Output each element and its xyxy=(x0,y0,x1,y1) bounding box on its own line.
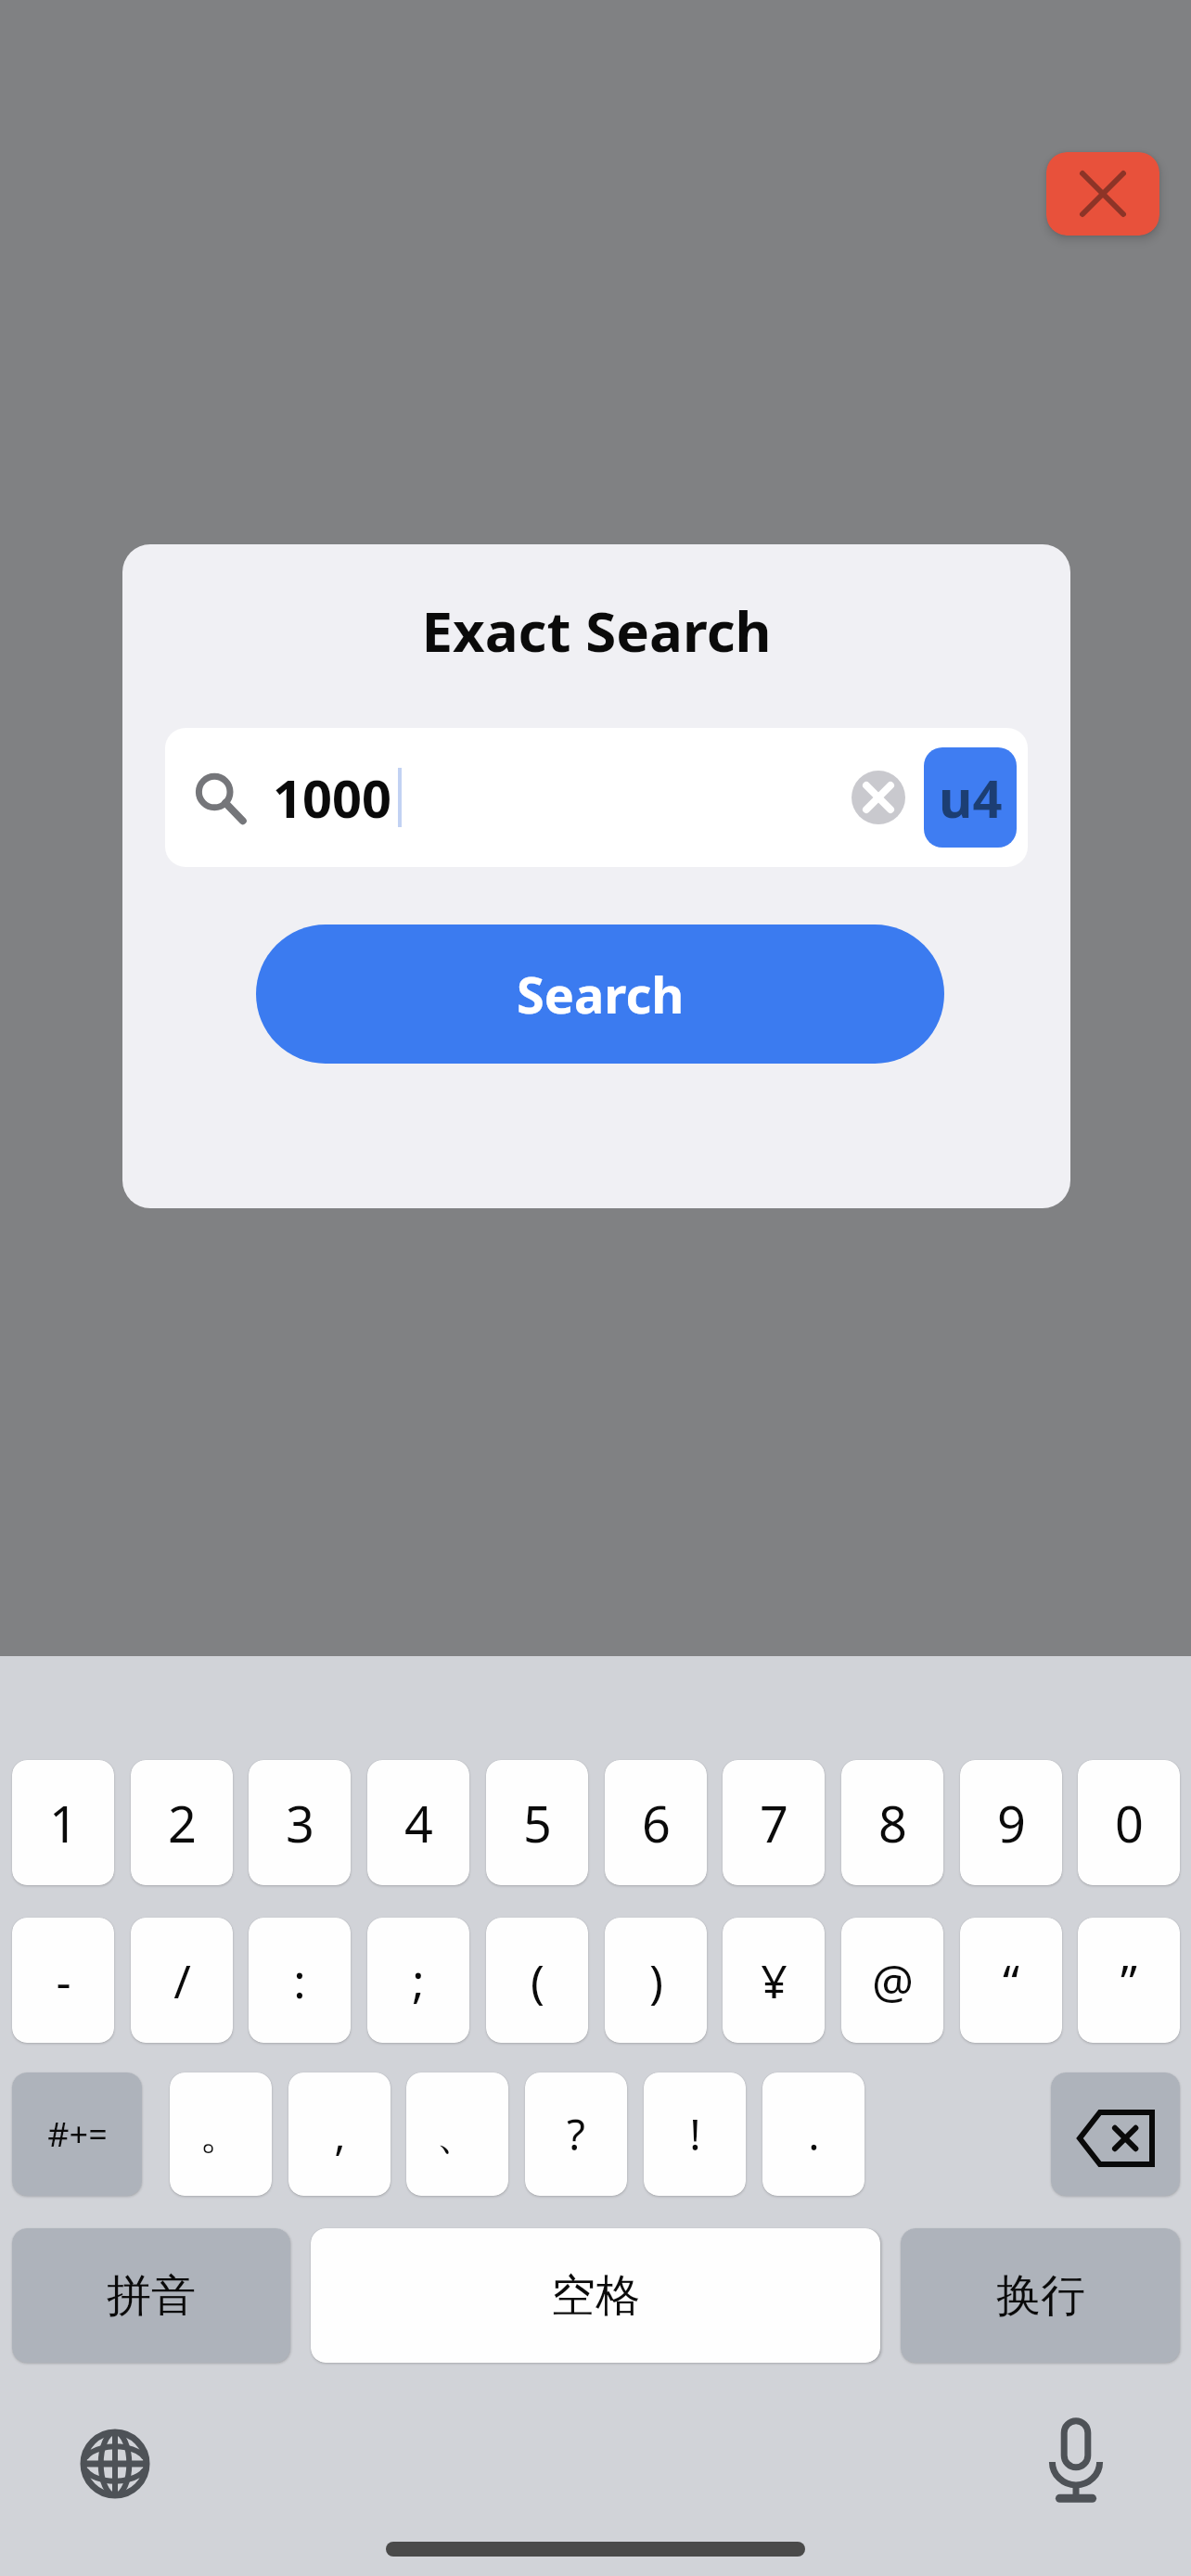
button[interactable]: 1000 xyxy=(165,728,1028,867)
staticText: 6 xyxy=(642,1789,671,1857)
button[interactable]: ! xyxy=(644,2072,746,2196)
button[interactable]: ? xyxy=(525,2072,627,2196)
staticText: ) xyxy=(649,1949,663,2012)
button[interactable]: / xyxy=(131,1918,233,2043)
staticText: ¥ xyxy=(761,1949,788,2012)
button[interactable]: #+= xyxy=(12,2072,142,2196)
staticText: 3 xyxy=(286,1789,314,1857)
staticText: 拼音 xyxy=(107,2268,196,2324)
staticText: 5 xyxy=(523,1789,552,1857)
button[interactable]: Close xyxy=(1046,152,1159,236)
staticText: ? xyxy=(567,2105,585,2163)
button[interactable]: ) xyxy=(605,1918,707,2043)
staticText: 1000 xyxy=(273,762,392,833)
staticText: : xyxy=(293,1949,306,2012)
button[interactable]: 7 xyxy=(723,1760,825,1885)
staticText: - xyxy=(56,1949,71,2012)
staticText: 9 xyxy=(997,1789,1026,1857)
button[interactable]: 5 xyxy=(486,1760,588,1885)
button[interactable]: : xyxy=(249,1918,351,2043)
staticText: 4 xyxy=(404,1789,433,1857)
staticText: #+= xyxy=(47,2111,108,2157)
staticText: ; xyxy=(412,1949,425,2012)
button[interactable]: ” xyxy=(1078,1918,1180,2043)
button[interactable]: 、 xyxy=(406,2072,508,2196)
button[interactable]: Search xyxy=(256,925,944,1064)
button[interactable]: 3 xyxy=(249,1760,351,1885)
button[interactable]: ¥ xyxy=(723,1918,825,2043)
staticText: @ xyxy=(872,1949,914,2012)
staticText: ! xyxy=(689,2105,701,2163)
button[interactable]: - xyxy=(12,1918,114,2043)
button[interactable]: 6 xyxy=(605,1760,707,1885)
button[interactable]: 空格 xyxy=(311,2228,880,2363)
staticText: 2 xyxy=(168,1789,197,1857)
staticText: ( xyxy=(531,1949,544,2012)
staticText: Exact Search xyxy=(122,593,1070,669)
button[interactable]: ; xyxy=(367,1918,469,2043)
staticText: ” xyxy=(1121,1949,1137,2012)
button[interactable]: , xyxy=(288,2072,391,2196)
button[interactable]: 2 xyxy=(131,1760,233,1885)
staticText: 换行 xyxy=(996,2268,1085,2324)
button[interactable]: Clear text xyxy=(852,771,905,824)
staticText: Search xyxy=(517,960,685,1028)
button[interactable]: 。 xyxy=(170,2072,272,2196)
staticText: / xyxy=(173,1949,191,2012)
staticText: . xyxy=(808,2105,820,2163)
staticText: u4 xyxy=(939,762,1003,833)
button[interactable]: u4 xyxy=(924,747,1017,848)
button[interactable]: . xyxy=(762,2072,864,2196)
staticText: 。 xyxy=(199,2108,242,2162)
button[interactable]: Voice input xyxy=(1039,2417,1113,2506)
staticText: “ xyxy=(1003,1949,1019,2012)
button[interactable]: ( xyxy=(486,1918,588,2043)
button[interactable]: 0 xyxy=(1078,1760,1180,1885)
button[interactable]: 换行 xyxy=(901,2228,1180,2363)
staticText: 8 xyxy=(878,1789,907,1857)
button[interactable]: 8 xyxy=(841,1760,943,1885)
button[interactable]: “ xyxy=(960,1918,1062,2043)
button[interactable]: Switch keyboard xyxy=(80,2429,150,2499)
button[interactable]: @ xyxy=(841,1918,943,2043)
button[interactable]: Backspace xyxy=(1051,2072,1180,2196)
button[interactable]: 9 xyxy=(960,1760,1062,1885)
staticText: 、 xyxy=(436,2108,479,2162)
button[interactable]: 4 xyxy=(367,1760,469,1885)
button[interactable]: 拼音 xyxy=(12,2228,290,2363)
staticText: , xyxy=(334,2105,346,2163)
staticText: 空格 xyxy=(551,2268,640,2324)
staticText: 1 xyxy=(49,1789,78,1857)
button[interactable]: 1 xyxy=(12,1760,114,1885)
staticText: 7 xyxy=(760,1789,788,1857)
staticText: 0 xyxy=(1115,1789,1144,1857)
